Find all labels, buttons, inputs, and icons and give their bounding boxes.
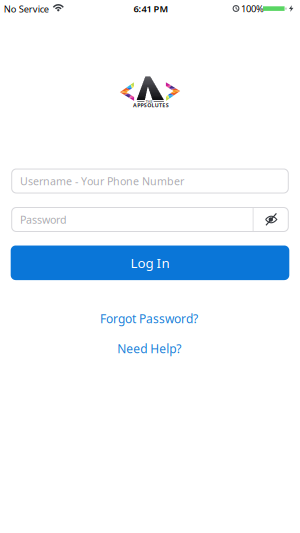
button[interactable]: Show Password (254, 207, 289, 231)
staticText: P (141, 102, 144, 109)
staticText: Forgot Password? (100, 310, 198, 326)
button[interactable]: Log In (11, 245, 289, 280)
staticText: Log In (130, 254, 169, 272)
button[interactable]: Need Help? (117, 340, 181, 356)
staticText: P (137, 102, 140, 109)
staticText: U (155, 102, 159, 109)
staticText: THE (145, 99, 152, 104)
staticText: Password (20, 212, 67, 227)
staticText: T (159, 102, 162, 109)
staticText: E (162, 102, 165, 109)
staticText: 6:41 PM (133, 2, 168, 15)
staticText: 100% (241, 2, 264, 15)
staticText: No Service (4, 3, 49, 15)
staticText: Need Help? (117, 340, 181, 356)
staticText: A (133, 102, 137, 109)
button[interactable]: Password (11, 207, 289, 232)
staticText: S (144, 102, 147, 109)
staticText: S (166, 102, 169, 109)
button[interactable]: Forgot Password? (100, 310, 198, 326)
staticText: L (151, 102, 154, 109)
staticText: O (147, 102, 151, 109)
staticText: Username - Your Phone Number (20, 174, 184, 188)
button[interactable]: Username - Your Phone Number (11, 168, 289, 193)
